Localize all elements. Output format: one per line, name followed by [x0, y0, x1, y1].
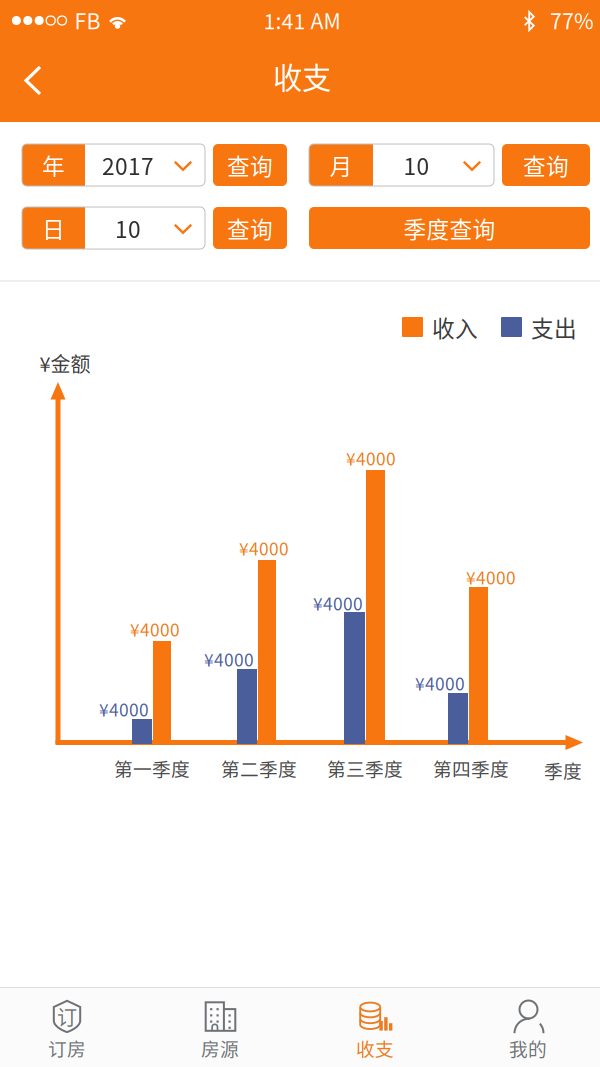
button[interactable]: 年: [22, 144, 205, 186]
button[interactable]: 日: [22, 207, 205, 249]
staticText: 月: [329, 149, 352, 181]
staticText: 10: [403, 149, 429, 181]
staticText: 查询: [227, 212, 273, 244]
staticText: 支出: [531, 311, 577, 343]
staticText: ¥4000: [415, 670, 465, 696]
button[interactable]: 查询: [213, 144, 287, 186]
staticText: 季度: [544, 756, 582, 783]
button[interactable]: 查询: [502, 144, 590, 186]
staticText: 第一季度: [114, 754, 190, 781]
staticText: 第三季度: [327, 754, 403, 781]
staticText: ¥4000: [130, 616, 180, 642]
staticText: 查询: [227, 149, 273, 181]
staticText: 第四季度: [433, 754, 509, 781]
staticText: ¥4000: [239, 535, 289, 561]
staticText: 1:41 AM: [263, 5, 340, 35]
staticText: ¥4000: [346, 445, 396, 471]
staticText: 季度查询: [403, 212, 495, 244]
staticText: ¥4000: [466, 564, 516, 590]
button[interactable]: 订: [0, 987, 134, 1067]
staticText: 77%: [550, 5, 594, 35]
staticText: ¥4000: [99, 696, 149, 722]
staticText: ¥4000: [313, 590, 363, 616]
button[interactable]: 查询: [213, 207, 287, 249]
staticText: 订: [57, 1002, 77, 1031]
staticText: ¥4000: [204, 646, 254, 672]
staticText: 收入: [432, 311, 478, 343]
button[interactable]: 我的: [461, 987, 595, 1067]
staticText: 年: [42, 149, 65, 181]
staticText: 收支: [273, 55, 331, 97]
button[interactable]: 季度查询: [309, 207, 590, 249]
button[interactable]: 房源: [153, 987, 287, 1067]
staticText: 2017: [102, 149, 154, 181]
button[interactable]: 收支: [308, 987, 442, 1067]
staticText: 10: [115, 212, 141, 244]
staticText: 日: [42, 212, 65, 244]
button[interactable]: 返回: [2, 48, 64, 112]
staticText: 房源: [201, 1034, 239, 1061]
staticText: ¥金额: [39, 348, 90, 377]
staticText: 查询: [523, 149, 569, 181]
staticText: FB: [74, 5, 100, 35]
staticText: 我的: [509, 1034, 547, 1061]
button[interactable]: 月: [309, 144, 494, 186]
staticText: 订房: [48, 1034, 86, 1061]
staticText: 收支: [356, 1034, 394, 1061]
staticText: 第二季度: [221, 754, 297, 781]
